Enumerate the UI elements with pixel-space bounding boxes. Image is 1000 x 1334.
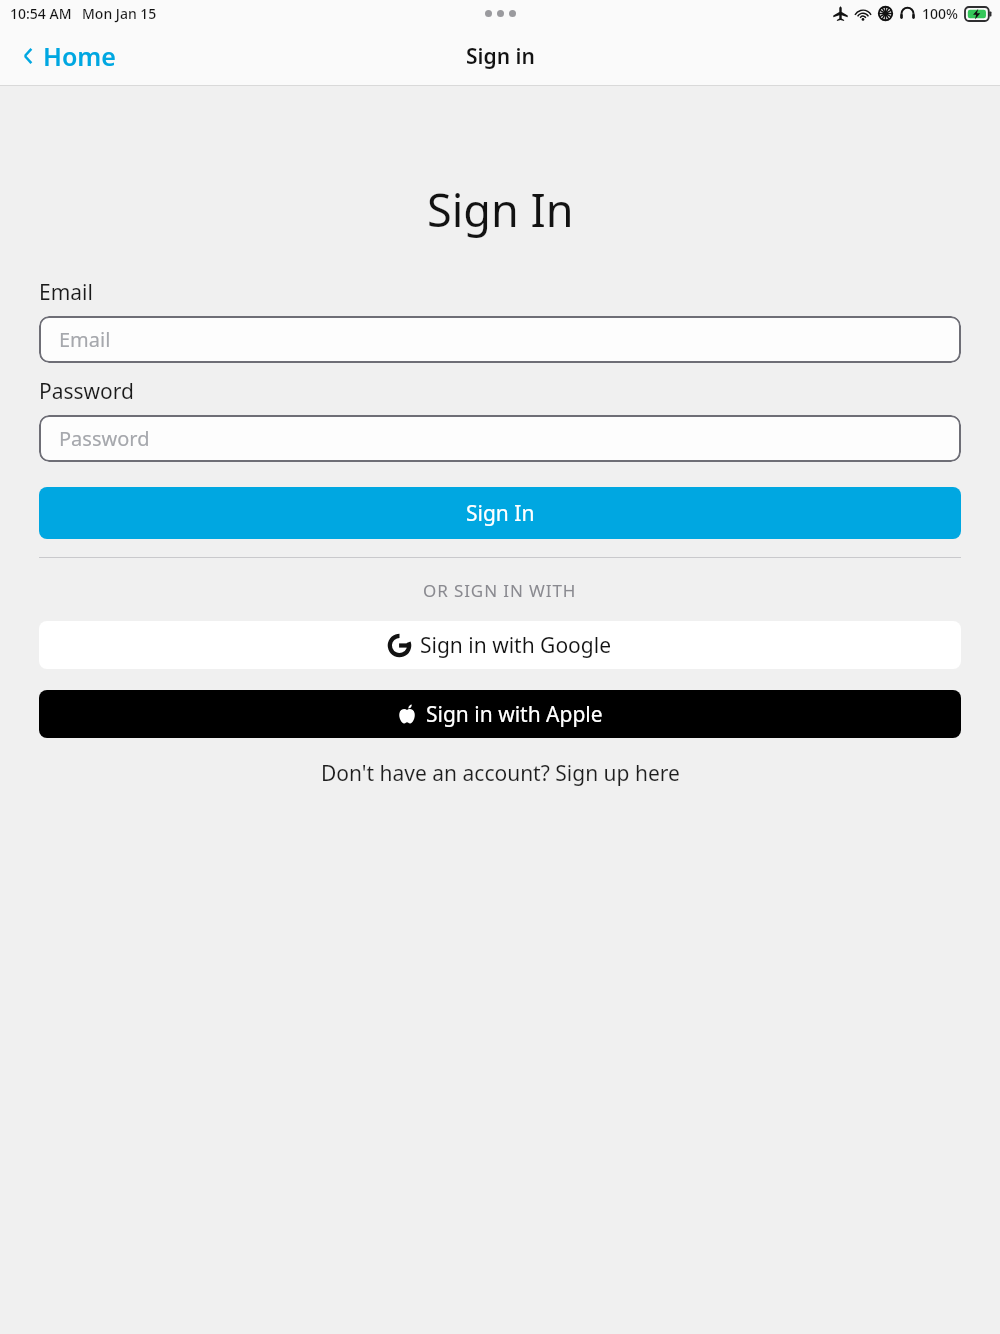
staticText: Email <box>39 278 93 307</box>
button[interactable]: Sign in with Google <box>39 621 961 669</box>
staticText: 100% <box>922 4 958 23</box>
staticText: Home <box>43 39 116 73</box>
staticText: Password <box>59 425 150 452</box>
staticText: Email <box>59 326 111 353</box>
staticText: OR SIGN IN WITH <box>423 579 577 602</box>
staticText: Sign In <box>466 499 535 528</box>
button[interactable]: Email <box>39 316 961 363</box>
staticText: Sign in with Google <box>420 631 611 660</box>
staticText: Mon Jan 15 <box>82 4 157 23</box>
button[interactable]: Sign in with Apple <box>39 690 961 738</box>
staticText: Sign in <box>466 42 535 71</box>
staticText: 10:54 AM <box>10 4 72 23</box>
staticText: Sign In <box>427 179 574 240</box>
staticText: Sign in with Apple <box>426 700 603 729</box>
button[interactable]: Password <box>39 415 961 462</box>
button[interactable]: Sign In <box>39 487 961 539</box>
staticText: Password <box>39 377 134 406</box>
button[interactable]: Don't have an account? Sign up here <box>39 759 961 788</box>
staticText: Don't have an account? Sign up here <box>321 759 680 788</box>
button[interactable]: Home <box>0 33 132 79</box>
